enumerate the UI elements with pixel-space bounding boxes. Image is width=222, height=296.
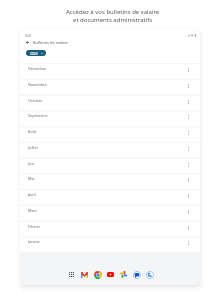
button[interactable]: YouTube (104, 268, 117, 281)
button[interactable]: All apps (65, 268, 78, 281)
button[interactable]: Avril (20, 189, 200, 205)
button[interactable]: More options for Avril (184, 192, 192, 200)
staticText: Mars (28, 208, 37, 213)
button[interactable]: Septembre (20, 110, 200, 126)
button[interactable]: Phone (143, 268, 156, 281)
button[interactable]: Août (20, 126, 200, 142)
button[interactable]: Décembre (20, 63, 200, 79)
button[interactable]: More options for Octobre (184, 98, 192, 106)
button[interactable]: Google Photos (117, 268, 130, 281)
staticText: Juillet (28, 145, 38, 150)
button[interactable]: 2023 (26, 50, 46, 56)
button[interactable]: More options for Août (184, 129, 192, 137)
button[interactable]: Juin (20, 158, 200, 174)
button[interactable]: Chrome (91, 268, 104, 281)
staticText: Décembre (28, 66, 47, 71)
button[interactable]: Octobre (20, 95, 200, 111)
button[interactable]: Février (20, 221, 200, 237)
button[interactable]: More options for Juillet (184, 145, 192, 153)
staticText: Mai (28, 176, 35, 181)
button[interactable]: Mars (20, 205, 200, 221)
button[interactable]: More options for Juin (184, 161, 192, 169)
staticText: Accédez à vos bulletins de salaire (66, 8, 160, 16)
staticText: Août (28, 129, 37, 134)
staticText: Février (28, 224, 41, 229)
button[interactable]: More options for Novembre (184, 82, 192, 90)
button[interactable]: Back (24, 39, 31, 46)
staticText: Avril (28, 192, 36, 197)
button[interactable]: Juillet (20, 142, 200, 158)
button[interactable]: Janvier (20, 236, 200, 252)
staticText: et documents administratifs (73, 16, 153, 24)
button[interactable]: More options for Janvier (184, 239, 192, 247)
staticText: 2023 (30, 51, 38, 55)
staticText: Janvier (28, 239, 41, 244)
staticText: Bulletins de salaire (33, 40, 68, 45)
button[interactable]: Google Chat (130, 268, 143, 281)
staticText: 9:41 (25, 33, 32, 37)
staticText: Septembre (28, 113, 48, 118)
staticText: Novembre (28, 82, 47, 87)
button[interactable]: Novembre (20, 79, 200, 95)
staticText: Juin (28, 161, 35, 166)
button[interactable]: More options for Septembre (184, 113, 192, 121)
button[interactable]: More options for Mars (184, 208, 192, 216)
button[interactable]: Mai (20, 173, 200, 189)
button[interactable]: More options for Décembre (184, 66, 192, 74)
staticText: Octobre (28, 98, 43, 103)
button[interactable]: More options for Février (184, 224, 192, 232)
button[interactable]: Gmail (78, 268, 91, 281)
button[interactable]: More options for Mai (184, 176, 192, 184)
